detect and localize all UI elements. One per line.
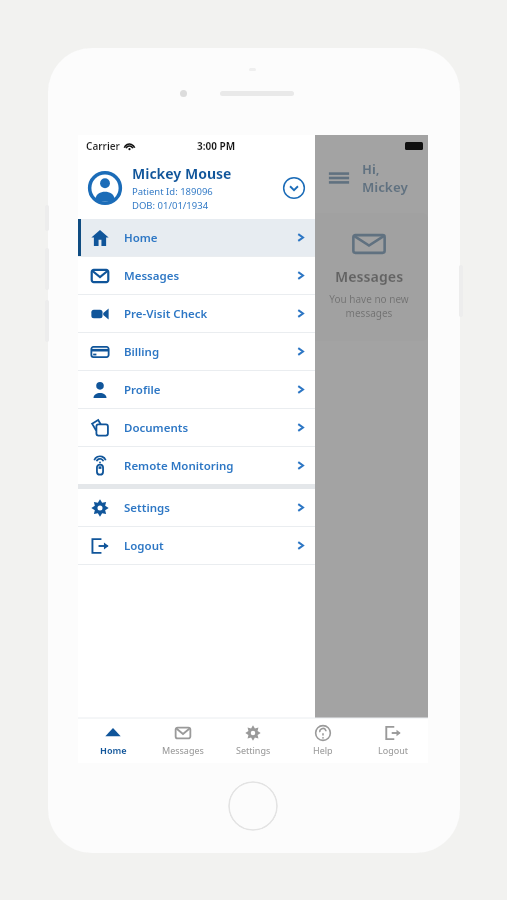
button[interactable]: Messages [148, 718, 218, 763]
staticText: Remote Monitoring [124, 458, 234, 474]
button[interactable]: Messages [310, 213, 428, 341]
staticText: Home [100, 744, 127, 756]
staticText: DOB: 01/01/1934 [132, 199, 209, 212]
button[interactable]: Documents [78, 409, 315, 446]
button[interactable]: Profile [78, 371, 315, 408]
staticText: Logout [124, 538, 164, 554]
button[interactable]: Mickey Mouse [78, 157, 315, 219]
button[interactable]: Menu [328, 167, 350, 189]
staticText: Messages [124, 268, 180, 284]
staticText: Billing [124, 344, 160, 360]
button[interactable]: Messages [78, 257, 315, 294]
staticText: Hi, Mickey [362, 160, 428, 196]
staticText: 3:00 PM [197, 139, 236, 153]
button[interactable]: Logout [358, 718, 428, 763]
button[interactable]: Help [288, 718, 358, 763]
staticText: Mickey Mouse [132, 164, 232, 183]
staticText: Pre-Visit Check [124, 306, 208, 322]
button[interactable]: Settings [218, 718, 288, 763]
staticText: Logout [378, 744, 408, 756]
staticText: Messages [162, 744, 204, 756]
button[interactable]: Pre-Visit Check [78, 295, 315, 332]
button[interactable]: Logout [78, 527, 315, 564]
staticText: Profile [124, 382, 161, 398]
staticText: Help [313, 744, 333, 756]
button[interactable]: Billing [78, 333, 315, 370]
button[interactable]: Home [78, 219, 315, 256]
button[interactable]: Home [78, 718, 148, 763]
staticText: Documents [124, 420, 189, 436]
staticText: Settings [236, 744, 271, 756]
staticText: Settings [124, 500, 170, 516]
button[interactable]: Settings [78, 489, 315, 526]
button[interactable]: Expand [283, 177, 305, 199]
staticText: Carrier [86, 139, 120, 153]
staticText: Messages [335, 267, 404, 286]
staticText: Home [124, 230, 158, 246]
staticText: You have no new messages [329, 292, 409, 320]
staticText: Patient Id: 189096 [132, 185, 213, 198]
button[interactable]: Remote Monitoring [78, 447, 315, 484]
